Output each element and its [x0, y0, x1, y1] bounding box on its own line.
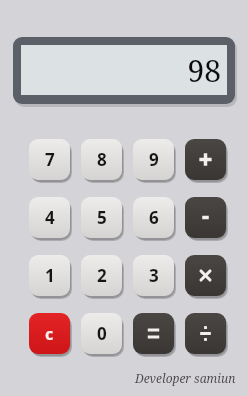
button[interactable]: 7	[29, 139, 70, 180]
button[interactable]: Divide	[185, 313, 226, 354]
button[interactable]: 1	[29, 255, 70, 296]
staticText: 98	[187, 50, 221, 91]
staticText: 3	[149, 264, 159, 287]
staticText: 0	[97, 322, 107, 345]
staticText: 6	[149, 206, 159, 229]
staticText: c	[45, 323, 54, 345]
button[interactable]: 6	[133, 197, 174, 238]
button[interactable]: 4	[29, 197, 70, 238]
button[interactable]: Plus	[185, 139, 226, 180]
staticText: 4	[45, 206, 55, 229]
button[interactable]: Clear	[29, 313, 70, 354]
staticText: 9	[149, 148, 159, 171]
button[interactable]: 2	[81, 255, 122, 296]
button[interactable]: 9	[133, 139, 174, 180]
staticText: 2	[97, 264, 107, 287]
staticText: Developer samiun	[135, 370, 236, 386]
button[interactable]: 8	[81, 139, 122, 180]
button[interactable]: 5	[81, 197, 122, 238]
button[interactable]: 0	[81, 313, 122, 354]
button[interactable]: Equals	[133, 313, 174, 354]
staticText: 7	[45, 148, 55, 171]
button[interactable]: Minus	[185, 197, 226, 238]
staticText: 8	[97, 148, 107, 171]
button[interactable]: 3	[133, 255, 174, 296]
staticText: 5	[97, 206, 107, 229]
button[interactable]: Multiply	[185, 255, 226, 296]
staticText: 1	[45, 264, 55, 287]
